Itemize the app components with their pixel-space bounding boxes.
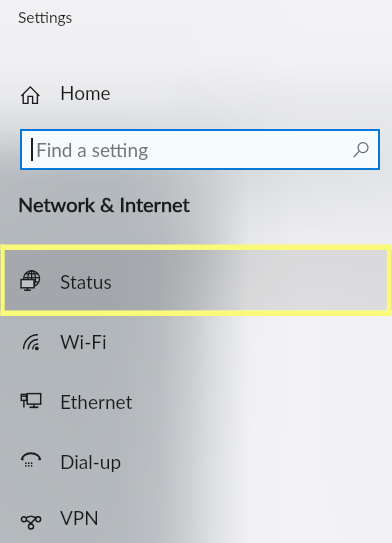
- button[interactable]: Dial-up: [0, 431, 392, 491]
- staticText: Wi-Fi: [60, 330, 107, 353]
- staticText: Find a setting: [36, 138, 149, 161]
- staticText: Settings: [18, 8, 73, 27]
- button[interactable]: Wi-Fi: [0, 311, 392, 371]
- staticText: Network & Internet: [18, 192, 190, 216]
- staticText: Home: [60, 81, 111, 104]
- button[interactable]: Ethernet: [0, 371, 392, 431]
- button[interactable]: VPN: [0, 491, 392, 543]
- staticText: Ethernet: [60, 390, 133, 413]
- button[interactable]: Status: [0, 251, 392, 311]
- staticText: VPN: [60, 506, 99, 529]
- button[interactable]: Home: [0, 71, 392, 113]
- staticText: Status: [60, 270, 112, 293]
- button[interactable]: Find a setting: [20, 129, 380, 170]
- staticText: Dial-up: [60, 450, 122, 473]
